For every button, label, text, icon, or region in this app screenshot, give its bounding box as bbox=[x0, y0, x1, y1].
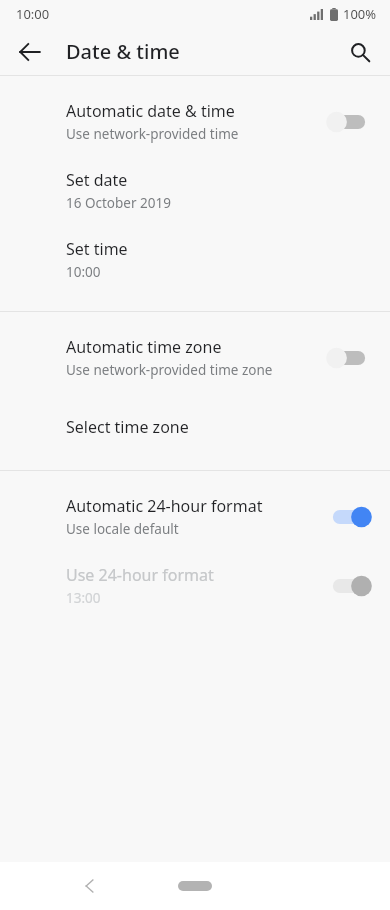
staticText: 13:00 bbox=[66, 589, 101, 607]
button[interactable]: Search bbox=[338, 30, 382, 74]
button[interactable]: Set time bbox=[0, 225, 390, 294]
staticText: 10:00 bbox=[16, 5, 50, 23]
button[interactable]: Toggle bbox=[326, 343, 372, 373]
staticText: 10:00 bbox=[66, 263, 101, 281]
button[interactable]: Back bbox=[68, 864, 112, 908]
staticText: Use locale default bbox=[66, 520, 179, 538]
button[interactable]: Select time zone bbox=[0, 392, 390, 461]
staticText: Set date bbox=[66, 169, 128, 191]
button[interactable]: Toggle bbox=[326, 502, 372, 532]
button[interactable]: Toggle bbox=[326, 107, 372, 137]
button[interactable]: Set date bbox=[0, 156, 390, 225]
staticText: Automatic date & time bbox=[66, 100, 235, 122]
button[interactable]: Automatic date & time bbox=[0, 87, 390, 156]
staticText: Use network-provided time bbox=[66, 125, 239, 143]
button[interactable]: Automatic 24-hour format bbox=[0, 482, 390, 551]
staticText: Set time bbox=[66, 238, 128, 260]
button[interactable]: Toggle bbox=[326, 571, 372, 601]
button[interactable]: Back bbox=[8, 30, 52, 74]
staticText: Select time zone bbox=[66, 416, 189, 438]
staticText: 100% bbox=[343, 5, 377, 23]
staticText: 16 October 2019 bbox=[66, 194, 171, 212]
staticText: Use network-provided time zone bbox=[66, 361, 273, 379]
staticText: Automatic 24-hour format bbox=[66, 495, 263, 517]
staticText: Automatic time zone bbox=[66, 336, 222, 358]
button[interactable]: Use 24-hour format bbox=[0, 551, 390, 620]
staticText: Date & time bbox=[66, 38, 180, 65]
button[interactable]: Home bbox=[178, 881, 212, 891]
button[interactable]: Automatic time zone bbox=[0, 323, 390, 392]
staticText: Use 24-hour format bbox=[66, 564, 214, 586]
